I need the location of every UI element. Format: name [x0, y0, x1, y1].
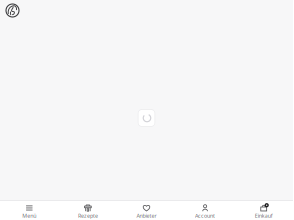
button[interactable]: Home [0, 0, 25, 21]
button[interactable]: Menü [0, 199, 59, 220]
button[interactable]: Anbieter [117, 199, 176, 220]
button[interactable]: Account [176, 199, 234, 220]
staticText: Einkauf [255, 212, 273, 219]
staticText: Anbieter [136, 212, 156, 219]
staticText: Account [195, 212, 215, 219]
staticText: Menü [22, 212, 36, 219]
staticText: Rezepte [78, 212, 98, 219]
button[interactable]: Einkauf [234, 199, 293, 220]
button[interactable]: Rezepte [59, 199, 117, 220]
